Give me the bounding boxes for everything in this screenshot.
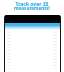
button[interactable] bbox=[5, 40, 60, 43]
button[interactable] bbox=[5, 58, 60, 61]
button[interactable] bbox=[5, 67, 60, 70]
button[interactable] bbox=[5, 61, 60, 64]
staticText: measurements! bbox=[0, 5, 64, 11]
staticText: Track over 20 bbox=[0, 1, 64, 7]
button[interactable] bbox=[5, 49, 60, 52]
button[interactable] bbox=[5, 37, 60, 40]
button[interactable] bbox=[5, 34, 60, 37]
button[interactable] bbox=[5, 43, 60, 46]
button[interactable] bbox=[5, 55, 60, 58]
button[interactable] bbox=[5, 46, 60, 49]
button[interactable] bbox=[5, 31, 60, 34]
button[interactable] bbox=[5, 52, 60, 55]
button[interactable] bbox=[5, 64, 60, 67]
